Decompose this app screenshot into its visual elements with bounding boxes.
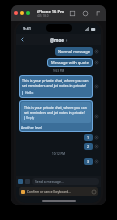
staticText: 9:41 xyxy=(23,26,31,31)
button[interactable]: This is your private chat, where you can… xyxy=(22,78,90,95)
button[interactable]: Close xyxy=(14,11,18,15)
staticText: 3 xyxy=(87,159,90,164)
button[interactable]: Send a message... xyxy=(35,178,96,185)
other: Message status xyxy=(95,160,98,163)
button[interactable]: Camera xyxy=(25,179,30,184)
button[interactable]: Confirm or cancel keyboard... xyxy=(19,187,98,196)
button[interactable]: Back xyxy=(18,35,27,44)
staticText: Hello xyxy=(25,90,34,95)
staticText: iPhone 16 Pro xyxy=(37,9,65,14)
button[interactable]: Attach xyxy=(18,179,23,184)
button[interactable]: More xyxy=(95,10,102,17)
button[interactable]: @moe xyxy=(50,37,68,43)
staticText: 1 xyxy=(87,135,90,140)
staticText: Confirm or cancel keyboard... xyxy=(27,190,92,194)
other: Message status xyxy=(95,61,98,64)
button[interactable]: Message with quote xyxy=(51,60,89,65)
staticText: This is your private chat, where you can… xyxy=(22,78,90,88)
staticText: @moe xyxy=(50,37,64,43)
staticText: Normal message xyxy=(58,49,90,54)
button[interactable]: 2 xyxy=(87,144,90,149)
staticText: 10:12 PM xyxy=(52,152,65,156)
other: Message status xyxy=(95,136,98,139)
staticText: This is your private chat, where you can… xyxy=(24,105,88,115)
button[interactable]: Maximize xyxy=(26,11,30,15)
staticText: Another level xyxy=(21,125,43,130)
staticText: 2 xyxy=(87,144,90,149)
button[interactable]: Minimize xyxy=(20,11,24,15)
other: Message status xyxy=(95,145,98,148)
button[interactable]: Home xyxy=(69,10,76,17)
staticText: 9:53 PM xyxy=(53,69,65,73)
other: Message status xyxy=(95,85,98,88)
other: Message status xyxy=(95,115,98,118)
button[interactable]: 3 xyxy=(87,159,90,164)
button[interactable]: This is your private chat, where you can… xyxy=(21,102,91,130)
button[interactable]: Normal message xyxy=(58,49,90,54)
staticText: Message with quote xyxy=(51,60,89,65)
button[interactable]: Rotate xyxy=(82,10,89,17)
staticText: Send a message... xyxy=(35,179,64,184)
button[interactable]: 1 xyxy=(87,135,90,140)
staticText: iOS 18.0 xyxy=(37,14,49,18)
other: Message status xyxy=(95,50,98,53)
staticText: Reply xyxy=(26,116,35,120)
